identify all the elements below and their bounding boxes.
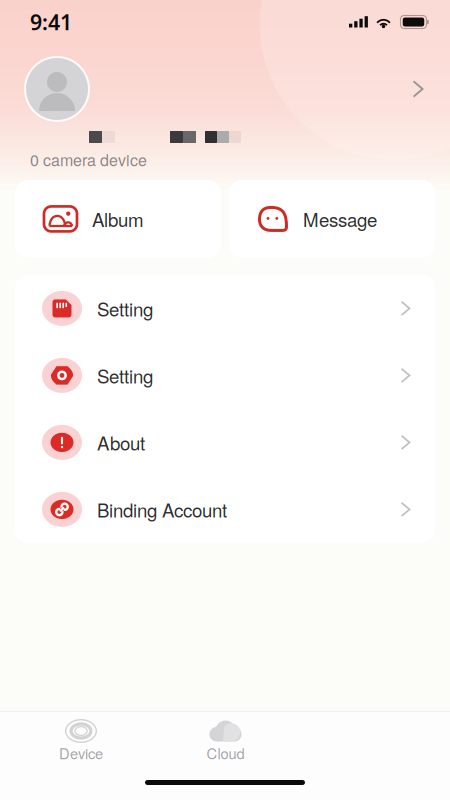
staticText: Device [59, 742, 103, 763]
staticText: Cloud [206, 742, 244, 763]
button[interactable]: Cloud [162, 712, 289, 768]
staticText: Binding Account [97, 496, 227, 523]
staticText: Message [303, 205, 377, 232]
staticText: Setting [97, 295, 153, 322]
staticText: 9:41 [30, 8, 72, 36]
staticText: 0 camera device [30, 148, 147, 171]
button[interactable]: Setting [15, 342, 435, 409]
staticText: About [97, 429, 145, 456]
staticText: Setting [97, 362, 153, 389]
button[interactable]: Message [229, 180, 435, 258]
button[interactable]: Album [15, 180, 221, 258]
button[interactable]: Device [0, 712, 162, 768]
button[interactable]: Setting [15, 275, 435, 342]
button[interactable]: Account details [402, 69, 434, 108]
staticText: Album [92, 205, 144, 232]
button[interactable]: About [15, 409, 435, 476]
button[interactable]: Binding Account [15, 476, 435, 543]
